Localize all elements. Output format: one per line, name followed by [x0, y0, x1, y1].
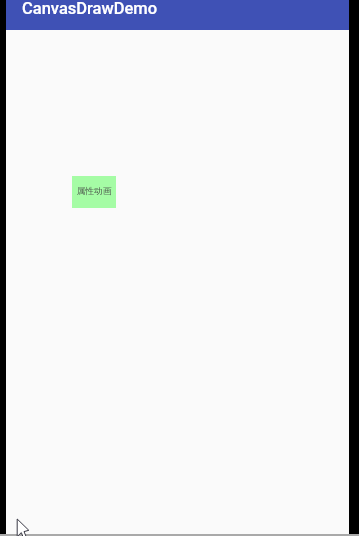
- button[interactable]: 属性动画: [72, 176, 116, 208]
- button[interactable]: CanvasDrawDemo: [6, 0, 349, 30]
- staticText: CanvasDrawDemo: [22, 0, 158, 18]
- staticText: 属性动画: [76, 186, 112, 197]
